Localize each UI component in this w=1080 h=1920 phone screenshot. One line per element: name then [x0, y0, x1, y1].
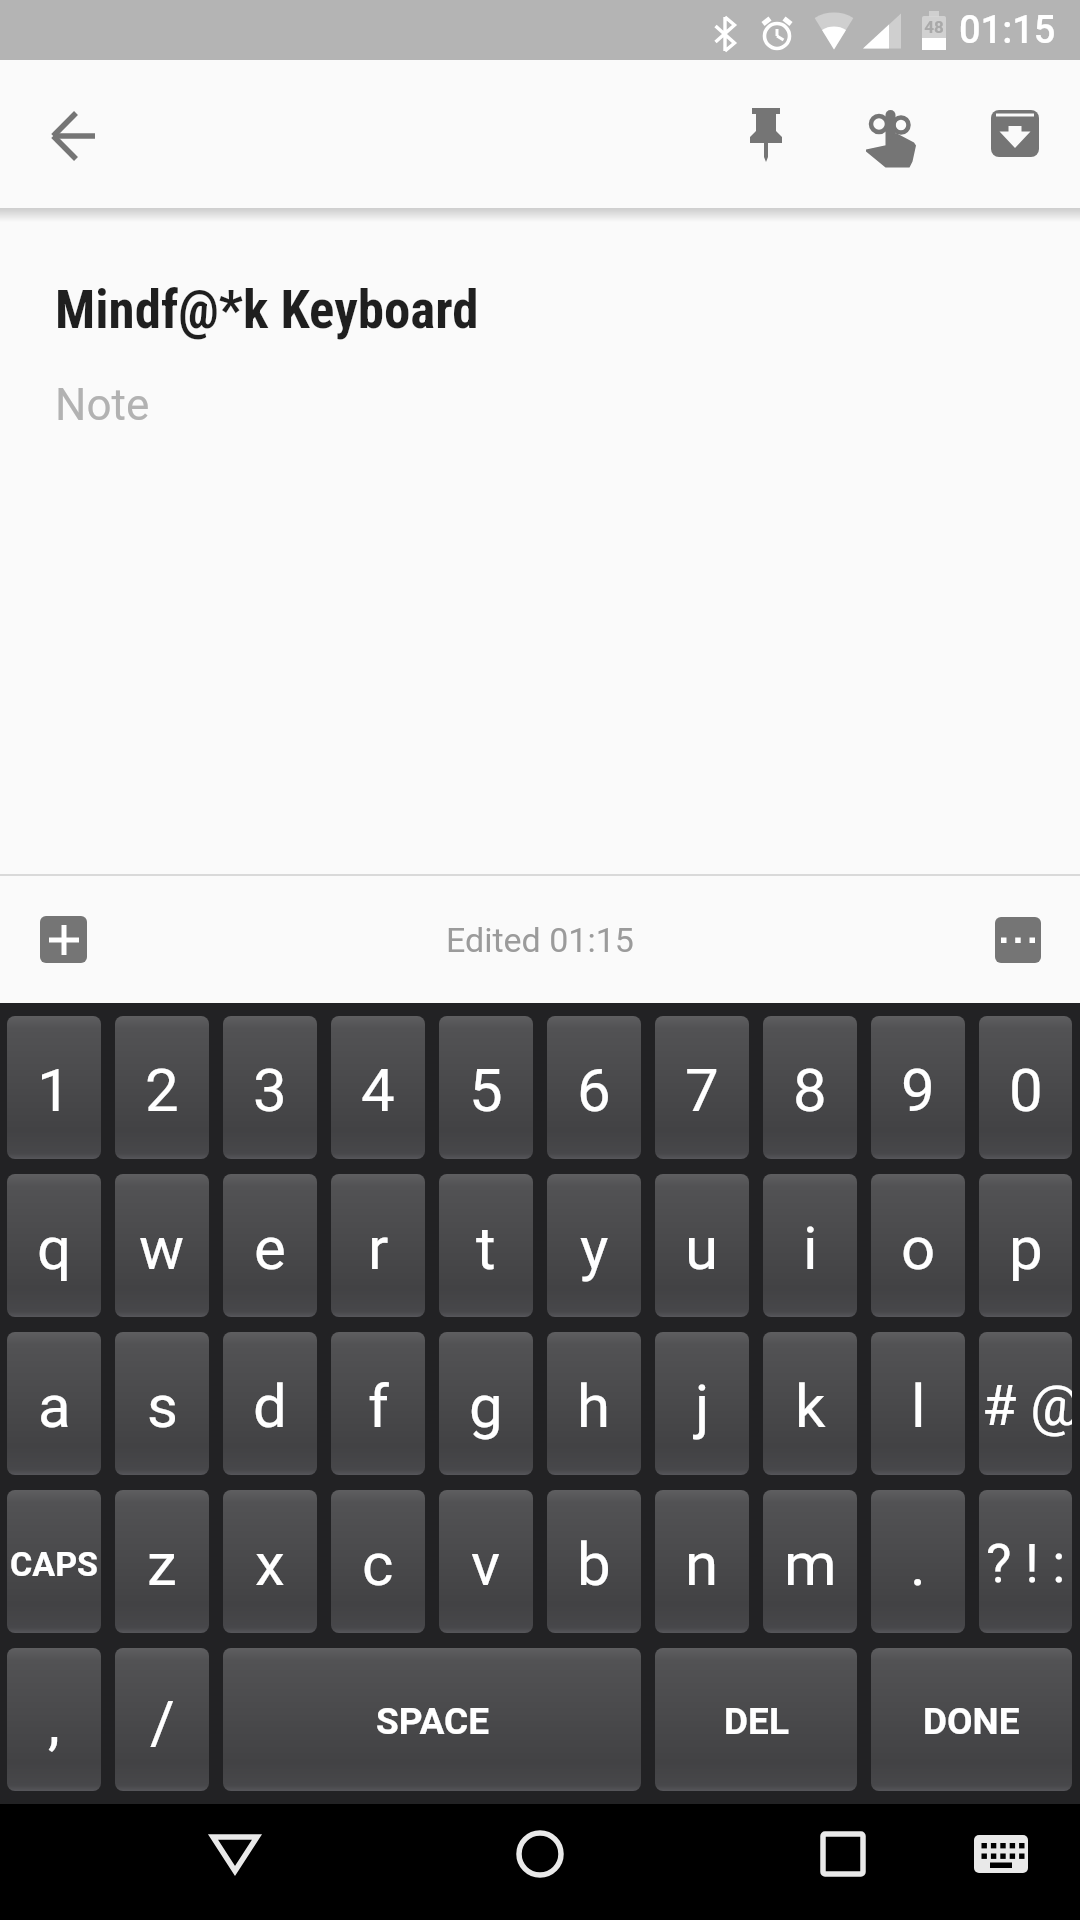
- staticText: ? ! :: [986, 1532, 1066, 1595]
- button[interactable]: ? ! :: [979, 1490, 1072, 1633]
- button[interactable]: [40, 916, 87, 963]
- button[interactable]: x: [223, 1490, 317, 1633]
- button[interactable]: g: [439, 1332, 533, 1475]
- button[interactable]: l: [871, 1332, 965, 1475]
- staticText: p: [1009, 1213, 1043, 1283]
- staticText: 6: [577, 1055, 611, 1125]
- button[interactable]: u: [655, 1174, 749, 1317]
- staticText: j: [695, 1371, 710, 1441]
- staticText: k: [795, 1371, 826, 1441]
- staticText: 3: [253, 1055, 287, 1125]
- button[interactable]: [965, 1818, 1037, 1890]
- staticText: s: [147, 1371, 178, 1441]
- staticText: 8: [793, 1055, 827, 1125]
- button[interactable]: k: [763, 1332, 857, 1475]
- staticText: e: [254, 1213, 286, 1283]
- staticText: o: [901, 1213, 936, 1283]
- button[interactable]: y: [547, 1174, 641, 1317]
- button[interactable]: 1: [7, 1016, 101, 1159]
- button[interactable]: # @: [979, 1332, 1072, 1475]
- staticText: w: [139, 1213, 185, 1283]
- button[interactable]: CAPS: [7, 1490, 101, 1633]
- staticText: 48: [922, 17, 946, 37]
- button[interactable]: 6: [547, 1016, 641, 1159]
- button[interactable]: [504, 1818, 576, 1890]
- staticText: r: [368, 1213, 389, 1283]
- staticText: a: [38, 1371, 71, 1441]
- button[interactable]: s: [115, 1332, 209, 1475]
- staticText: t: [476, 1213, 496, 1283]
- staticText: x: [255, 1529, 285, 1599]
- staticText: 7: [685, 1055, 719, 1125]
- button[interactable]: h: [547, 1332, 641, 1475]
- staticText: 4: [361, 1055, 395, 1125]
- staticText: m: [784, 1529, 837, 1599]
- button[interactable]: ,: [7, 1648, 101, 1791]
- button[interactable]: j: [655, 1332, 749, 1475]
- staticText: 9: [901, 1055, 935, 1125]
- staticText: # @: [982, 1373, 1072, 1439]
- button[interactable]: .: [871, 1490, 965, 1633]
- staticText: q: [37, 1213, 72, 1283]
- staticText: b: [577, 1529, 611, 1599]
- button[interactable]: 3: [223, 1016, 317, 1159]
- button[interactable]: 5: [439, 1016, 533, 1159]
- staticText: 5: [469, 1055, 503, 1125]
- button[interactable]: q: [7, 1174, 101, 1317]
- button[interactable]: SPACE: [223, 1648, 641, 1791]
- button[interactable]: 2: [115, 1016, 209, 1159]
- button[interactable]: t: [439, 1174, 533, 1317]
- staticText: 1: [37, 1055, 71, 1125]
- staticText: i: [803, 1213, 818, 1283]
- button[interactable]: DEL: [655, 1648, 857, 1791]
- staticText: d: [253, 1371, 287, 1441]
- staticText: y: [580, 1213, 609, 1283]
- staticText: 2: [145, 1055, 179, 1125]
- button[interactable]: [732, 100, 800, 168]
- button[interactable]: v: [439, 1490, 533, 1633]
- staticText: z: [147, 1529, 177, 1599]
- button[interactable]: [199, 1818, 271, 1890]
- button[interactable]: 9: [871, 1016, 965, 1159]
- button[interactable]: 4: [331, 1016, 425, 1159]
- button[interactable]: [807, 1818, 879, 1890]
- button[interactable]: c: [331, 1490, 425, 1633]
- staticText: f: [368, 1371, 389, 1441]
- button[interactable]: r: [331, 1174, 425, 1317]
- staticText: CAPS: [10, 1544, 99, 1584]
- staticText: l: [911, 1371, 926, 1441]
- button[interactable]: i: [763, 1174, 857, 1317]
- button[interactable]: [995, 917, 1041, 963]
- staticText: SPACE: [376, 1700, 489, 1743]
- staticText: n: [685, 1529, 719, 1599]
- button[interactable]: e: [223, 1174, 317, 1317]
- staticText: u: [685, 1213, 719, 1283]
- button[interactable]: /: [115, 1648, 209, 1791]
- button[interactable]: d: [223, 1332, 317, 1475]
- staticText: Note: [55, 379, 150, 431]
- staticText: c: [362, 1529, 394, 1599]
- button[interactable]: m: [763, 1490, 857, 1633]
- button[interactable]: [857, 100, 925, 168]
- button[interactable]: 8: [763, 1016, 857, 1159]
- button[interactable]: o: [871, 1174, 965, 1317]
- staticText: v: [471, 1529, 501, 1599]
- button[interactable]: b: [547, 1490, 641, 1633]
- button[interactable]: DONE: [871, 1648, 1072, 1791]
- staticText: h: [577, 1371, 611, 1441]
- button[interactable]: p: [979, 1174, 1072, 1317]
- button[interactable]: [38, 98, 110, 170]
- staticText: Mindf@*k Keyboard: [55, 279, 479, 341]
- button[interactable]: [982, 100, 1050, 168]
- button[interactable]: w: [115, 1174, 209, 1317]
- staticText: .: [910, 1529, 926, 1599]
- button[interactable]: 7: [655, 1016, 749, 1159]
- staticText: /: [150, 1687, 175, 1757]
- button[interactable]: 0: [979, 1016, 1072, 1159]
- staticText: 01:15: [959, 8, 1056, 53]
- button[interactable]: z: [115, 1490, 209, 1633]
- button[interactable]: f: [331, 1332, 425, 1475]
- button[interactable]: a: [7, 1332, 101, 1475]
- button[interactable]: n: [655, 1490, 749, 1633]
- staticText: DONE: [923, 1700, 1020, 1743]
